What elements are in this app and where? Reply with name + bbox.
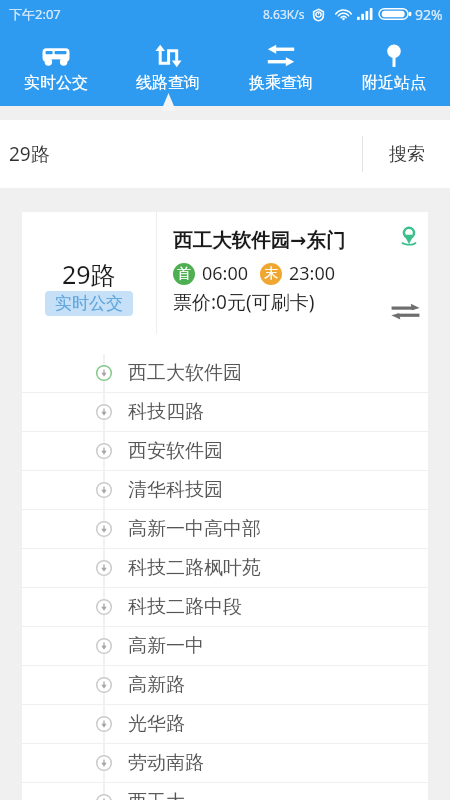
button[interactable]: 科技四路 [22, 393, 428, 431]
staticText: 科技二路中段 [128, 595, 242, 619]
staticText: 29路 [9, 141, 362, 167]
staticText: 附近站点 [362, 73, 426, 93]
staticText: 实时公交 [55, 293, 123, 314]
button[interactable]: 西工大 [22, 783, 428, 800]
staticText: 西工大软件园 [128, 361, 242, 385]
staticText: 高新一中高中部 [128, 517, 261, 541]
button[interactable]: 西安软件园 [22, 432, 428, 470]
button[interactable]: 清华科技园 [22, 471, 428, 509]
staticText: 清华科技园 [128, 478, 223, 502]
staticText: 西安软件园 [128, 439, 223, 463]
staticText: 高新一中 [128, 634, 204, 658]
staticText: 光华路 [128, 712, 185, 736]
staticText: 高新路 [128, 673, 185, 697]
staticText: 科技二路枫叶苑 [128, 556, 261, 580]
staticText: 实时公交 [24, 73, 88, 93]
staticText: 线路查询 [136, 73, 200, 93]
button[interactable]: 劳动南路 [22, 744, 428, 782]
staticText: 换乘查询 [249, 73, 313, 93]
button[interactable]: 附近站点 [337, 28, 450, 106]
button[interactable]: 搜索 [363, 120, 450, 188]
staticText: 搜索 [389, 143, 425, 166]
button[interactable]: 高新一中 [22, 627, 428, 665]
staticText: 06:00 [202, 261, 249, 286]
staticText: 92% [415, 5, 443, 24]
button[interactable]: 高新一中高中部 [22, 510, 428, 548]
staticText: 科技四路 [128, 400, 204, 424]
button[interactable]: 29路 [22, 212, 428, 334]
button[interactable]: Reverse direction [391, 303, 420, 320]
staticText: 劳动南路 [128, 751, 204, 775]
staticText: 西工大 [128, 790, 185, 800]
staticText: 票价:0元(可刷卡) [173, 289, 315, 315]
staticText: 西工大软件园→东门 [173, 228, 400, 253]
button[interactable]: 高新路 [22, 666, 428, 704]
button[interactable]: 光华路 [22, 705, 428, 743]
button[interactable]: 科技二路中段 [22, 588, 428, 626]
button[interactable]: 换乘查询 [224, 28, 337, 106]
button[interactable]: 科技二路枫叶苑 [22, 549, 428, 587]
button[interactable]: 西工大软件园 [22, 354, 428, 392]
staticText: 29路 [62, 257, 116, 291]
button[interactable]: Show on map [400, 226, 418, 245]
button[interactable]: 实时公交 [0, 28, 112, 106]
staticText: 末 [264, 265, 278, 283]
staticText: 23:00 [289, 261, 336, 286]
button[interactable]: 线路查询 [112, 28, 224, 106]
staticText: 首 [177, 265, 191, 283]
staticText: 8.63K/s [263, 6, 305, 22]
staticText: 下午2:07 [9, 5, 61, 23]
